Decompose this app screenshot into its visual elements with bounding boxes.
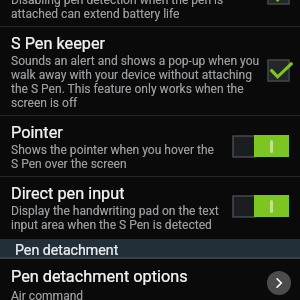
staticText: S Pen keeper [11,34,106,53]
other: S Pen keeper checkbox, on [268,60,294,86]
button[interactable]: Open pen detachment options [267,271,291,295]
staticText: Display the handwriting pad on the text [11,204,219,218]
other: Pen detection checkbox, on [268,0,294,9]
staticText: Air command [11,289,84,300]
staticText: Direct pen input [11,184,125,203]
staticText: Disabling pen detection when the pen is [11,0,224,7]
staticText: walk away with your device without attac… [11,68,252,82]
button[interactable]: Pen detachment options [0,261,300,300]
staticText: Shows the pointer when you hover the [11,143,214,157]
staticText: Pen detachment options [11,267,188,286]
staticText: attached can extend battery life [11,7,180,19]
staticText: Pen detachment [15,242,119,259]
staticText: Pointer [11,123,63,142]
staticText: the S Pen. This feature only works when … [11,82,244,96]
button[interactable]: Pointer [0,116,300,176]
other: Pointer switch, on [233,135,289,157]
staticText: screen is off [11,96,78,110]
staticText: S Pen over the screen [11,157,127,171]
other: Direct pen input switch, on [233,195,289,217]
button[interactable]: S Pen keeper [0,27,300,115]
button[interactable]: Direct pen input [0,177,300,239]
staticText: Sounds an alert and shows a pop-up when … [11,54,260,68]
staticText: input area when the S Pen is detected [11,218,212,232]
button[interactable]: Disabling pen detection when the pen is [0,0,300,26]
